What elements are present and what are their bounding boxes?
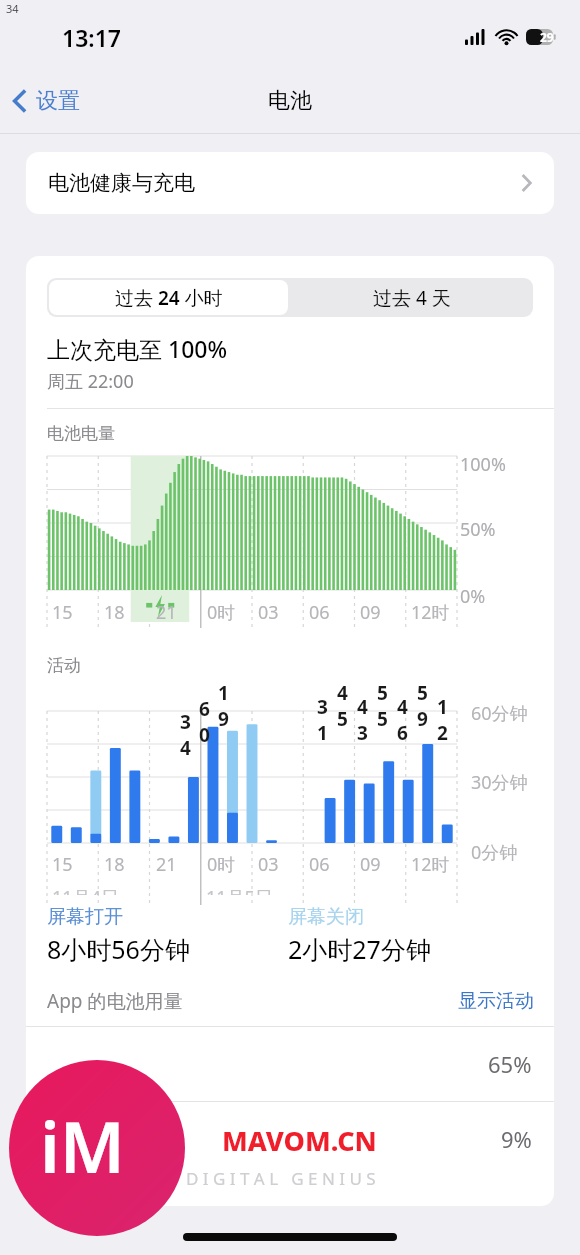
staticText: 46 <box>397 694 417 746</box>
staticText: 06 <box>309 600 330 625</box>
staticText: 后台活动 <box>47 1143 115 1164</box>
staticText: iM <box>40 1098 125 1193</box>
staticText: 60分钟 <box>471 701 528 726</box>
staticText: 34 <box>180 709 199 761</box>
button[interactable]: 音乐 <box>26 1102 554 1176</box>
staticText: 100% <box>460 452 506 477</box>
staticText: 29 <box>540 29 554 45</box>
staticText: 过去 4 天 <box>373 285 451 311</box>
staticText: 0时 <box>207 852 236 877</box>
staticText: 09 <box>360 852 381 877</box>
staticText: 8小时56分钟 <box>47 932 190 966</box>
staticText: 周五 22:00 <box>47 369 134 394</box>
staticText: 屏幕关闭 <box>288 905 364 929</box>
staticText: 60 <box>199 696 218 748</box>
staticText: 03 <box>258 600 279 625</box>
staticText: 43 <box>357 694 377 746</box>
button[interactable]: 过去 24 小时 <box>49 280 288 315</box>
staticText: 电池电量 <box>47 423 115 444</box>
staticText: 15 <box>52 852 73 877</box>
staticText: 30分钟 <box>471 770 528 795</box>
staticText: 活动 <box>47 655 81 676</box>
staticText: 显示活动 <box>458 989 534 1013</box>
staticText: 设置 <box>36 87 80 115</box>
staticText: 31 <box>317 694 337 746</box>
staticText: 12 <box>437 694 457 746</box>
staticText: 19 <box>218 680 237 732</box>
staticText: D I G I T A L G E N I U S <box>186 1167 376 1190</box>
staticText: 电池健康与充电 <box>48 170 195 196</box>
staticText: 过去 24 小时 <box>115 285 223 311</box>
staticText: 9% <box>501 1124 532 1154</box>
staticText: 18 <box>104 852 125 877</box>
staticText: 13:17 <box>62 22 121 53</box>
staticText: 上次充电至 100% <box>47 333 228 364</box>
staticText: 11月4日 <box>52 885 119 895</box>
staticText: 2小时27分钟 <box>288 932 431 966</box>
staticText: 电池 <box>268 87 312 115</box>
staticText: 06 <box>309 852 330 877</box>
staticText: 03 <box>258 852 279 877</box>
staticText: 21 <box>156 852 177 877</box>
staticText: MAVOM.CN <box>222 1122 377 1159</box>
staticText: 音乐 <box>47 1115 89 1141</box>
staticText: 11月5日 <box>206 885 273 895</box>
staticText: 18 <box>104 600 125 625</box>
staticText: 65% <box>488 1049 532 1079</box>
staticText: App 的电池用量 <box>47 988 183 1014</box>
staticText: 45 <box>337 680 357 732</box>
staticText: 34 <box>6 1 19 16</box>
staticText: 15 <box>52 600 73 625</box>
button[interactable]: 电池健康与充电 <box>26 152 554 214</box>
button[interactable]: 过去 4 天 <box>290 278 533 317</box>
staticText: 屏幕打开 <box>47 905 123 929</box>
staticText: 55 <box>377 680 397 732</box>
button[interactable]: 设置 <box>0 83 92 119</box>
staticText: 12时 <box>411 852 450 877</box>
staticText: 21 <box>156 600 177 625</box>
staticText: 0% <box>460 584 486 609</box>
staticText: 59 <box>417 680 437 732</box>
staticText: 12时 <box>411 600 450 625</box>
staticText: 50% <box>460 517 496 542</box>
button[interactable]: 显示活动 <box>458 989 534 1013</box>
staticText: 0分钟 <box>471 840 518 865</box>
staticText: 0时 <box>207 600 236 625</box>
staticText: 09 <box>360 600 381 625</box>
button[interactable]: 65% <box>26 1027 554 1101</box>
